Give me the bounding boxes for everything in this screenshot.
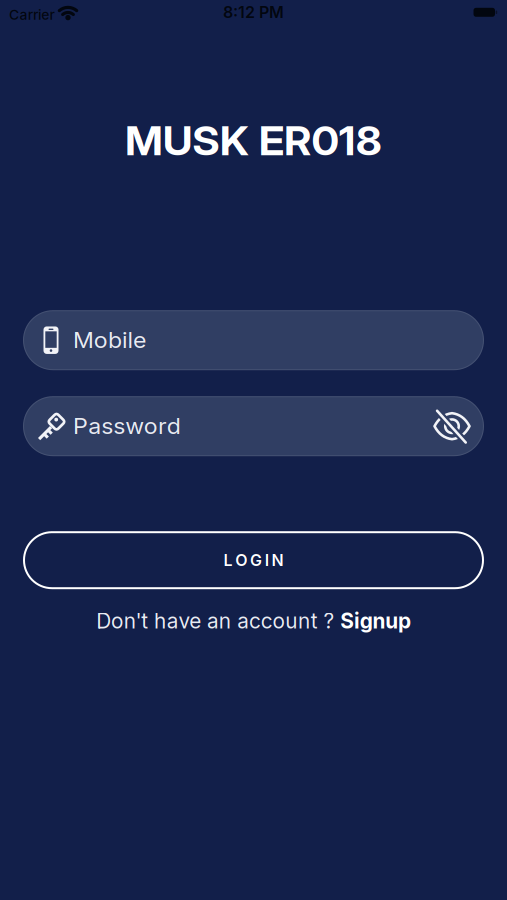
button[interactable]: Signup: [93, 608, 414, 633]
staticText: Carrier: [9, 7, 53, 23]
staticText: Don't have an account ?: [93, 608, 342, 633]
staticText: Password: [73, 414, 172, 439]
staticText: LOGIN: [223, 551, 284, 570]
staticText: 8:12 PM: [223, 3, 284, 22]
button[interactable]: LOGIN: [23, 531, 484, 589]
button[interactable]: Password text field: [23, 396, 484, 456]
button[interactable]: Mobile text field: [23, 310, 484, 370]
button[interactable]: Show password: [432, 406, 484, 446]
staticText: Signup: [342, 608, 414, 633]
staticText: Mobile: [73, 328, 140, 353]
staticText: MUSK ER018: [131, 117, 375, 164]
